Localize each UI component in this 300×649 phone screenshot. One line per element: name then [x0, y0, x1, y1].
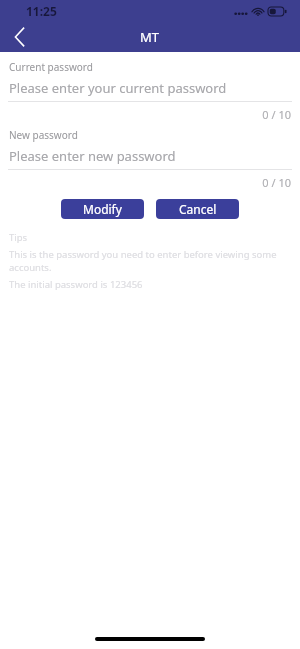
staticText: Please enter new password — [9, 147, 176, 165]
button[interactable]: Back — [0, 22, 40, 52]
button[interactable]: Please enter your current password — [0, 79, 300, 97]
staticText: Please enter your current password — [9, 79, 227, 97]
staticText: The initial password is 123456 — [9, 278, 143, 291]
staticText: This is the password you need to enter b… — [9, 248, 291, 274]
staticText: MT — [140, 28, 160, 46]
button[interactable]: Please enter new password — [0, 147, 300, 165]
staticText: Cancel — [179, 201, 217, 217]
staticText: 11:25 — [26, 3, 57, 19]
staticText: Current password — [9, 60, 93, 74]
staticText: Tips — [9, 231, 28, 244]
button[interactable]: Modify — [61, 199, 144, 219]
staticText: 0 / 10 — [0, 175, 291, 190]
staticText: Modify — [83, 201, 122, 217]
staticText: New password — [9, 128, 78, 142]
button[interactable]: Cancel — [156, 199, 239, 219]
staticText: 0 / 10 — [0, 107, 291, 122]
